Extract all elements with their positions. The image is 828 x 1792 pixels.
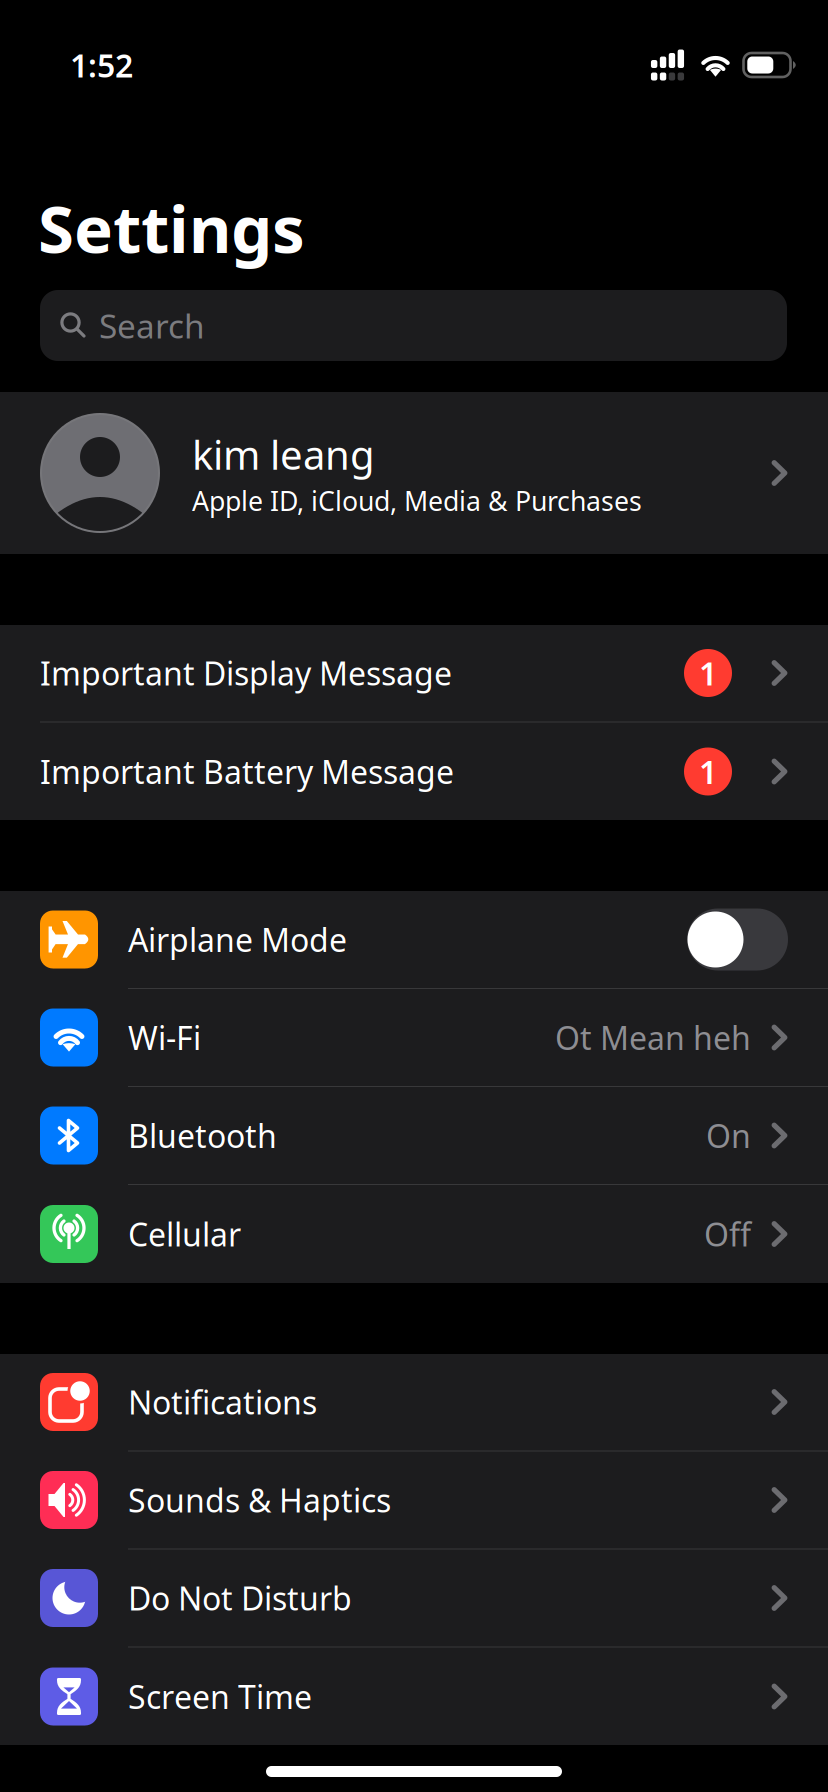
button[interactable]: Bluetooth: [0, 1087, 828, 1184]
staticText: On: [706, 1114, 751, 1157]
button[interactable]: Screen Time: [0, 1647, 828, 1745]
staticText: Screen Time: [128, 1675, 312, 1718]
staticText: Airplane Mode: [128, 918, 347, 961]
button[interactable]: Search: [40, 290, 787, 361]
staticText: 1: [699, 652, 717, 694]
button[interactable]: kim leang: [0, 392, 828, 554]
staticText: kim leang: [192, 428, 375, 481]
staticText: Sounds & Haptics: [128, 1479, 391, 1521]
staticText: Settings: [38, 184, 305, 271]
staticText: Off: [704, 1213, 751, 1255]
button[interactable]: Cellular: [0, 1185, 828, 1283]
staticText: Apple ID, iCloud, Media & Purchases: [192, 483, 642, 518]
staticText: 1:52: [70, 44, 133, 86]
staticText: Important Display Message: [40, 652, 452, 694]
button[interactable]: Sounds & Haptics: [0, 1451, 828, 1548]
staticText: Cellular: [128, 1213, 241, 1255]
button[interactable]: Airplane Mode: [0, 891, 828, 988]
staticText: Notifications: [128, 1381, 317, 1423]
staticText: 1: [699, 750, 717, 793]
staticText: Search: [99, 303, 205, 348]
button[interactable]: Wi-Fi: [0, 989, 828, 1086]
button[interactable]: Important Battery Message: [0, 722, 828, 820]
staticText: Important Battery Message: [40, 750, 454, 793]
staticText: Do Not Disturb: [128, 1577, 352, 1619]
staticText: Ot Mean heh: [555, 1016, 751, 1059]
button[interactable]: Do Not Disturb: [0, 1549, 828, 1646]
button[interactable]: Important Display Message: [0, 624, 828, 721]
staticText: Bluetooth: [128, 1114, 277, 1157]
staticText: Wi-Fi: [128, 1016, 201, 1059]
button[interactable]: Notifications: [0, 1353, 828, 1450]
